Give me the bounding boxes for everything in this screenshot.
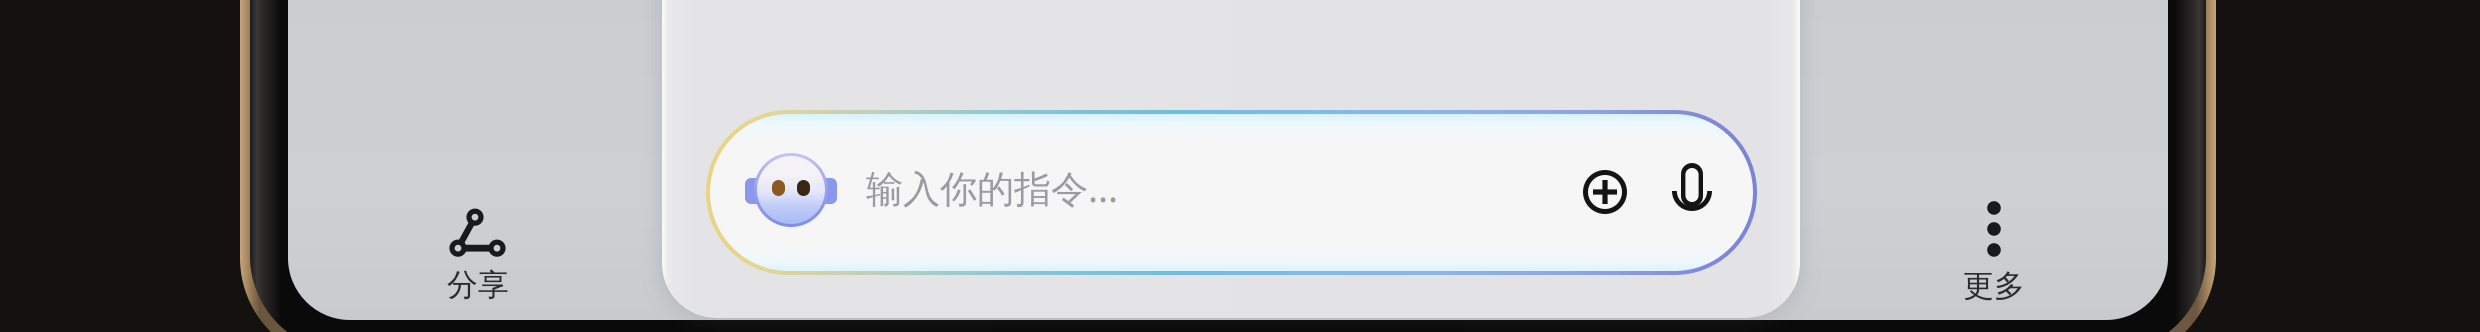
staticText: 分享 xyxy=(447,266,509,304)
button[interactable]: 分享 xyxy=(0,0,2480,332)
button[interactable]: 更多 xyxy=(0,0,2480,332)
staticText: 输入你的指令... xyxy=(866,163,1118,213)
button[interactable]: Voice input xyxy=(0,0,2480,332)
staticText: 更多 xyxy=(1963,267,2025,305)
button[interactable]: Add attachment xyxy=(0,0,2480,332)
